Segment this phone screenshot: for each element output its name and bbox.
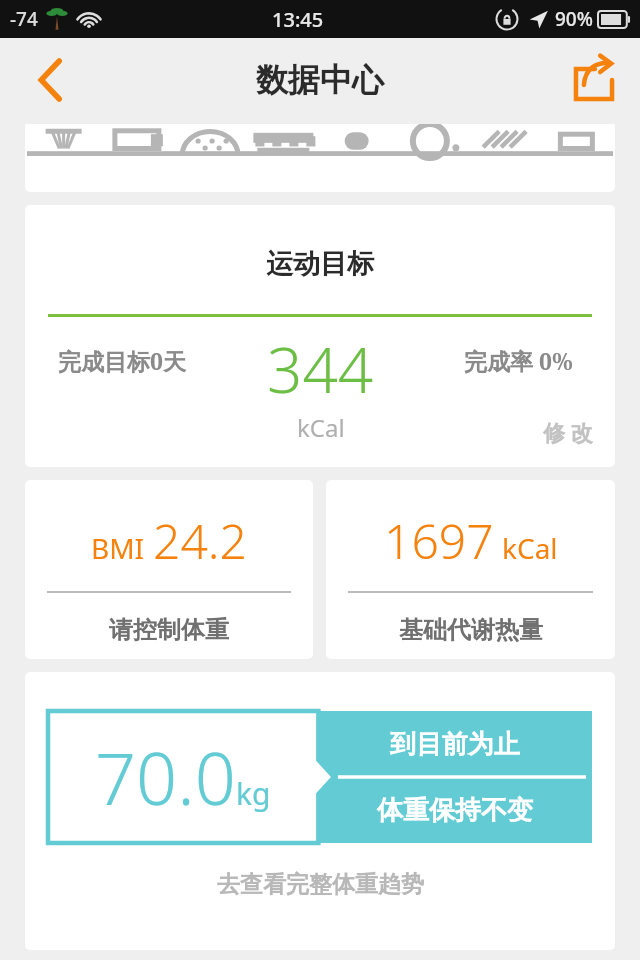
- staticText: 344: [267, 327, 374, 411]
- staticText: -74: [10, 6, 38, 32]
- staticText: BMI: [91, 529, 145, 567]
- button[interactable]: 去查看完整体重趋势: [217, 870, 424, 899]
- staticText: 完成率 0%: [464, 345, 573, 376]
- button[interactable]: BMI: [25, 480, 313, 659]
- staticText: kCal: [502, 529, 558, 567]
- staticText: 90%: [555, 6, 593, 32]
- button[interactable]: 1697: [326, 480, 615, 659]
- button[interactable]: Back: [22, 52, 78, 108]
- staticText: 1697: [384, 508, 494, 573]
- button[interactable]: 70.0: [25, 672, 615, 950]
- staticText: 70.0: [95, 728, 236, 826]
- staticText: 体重保持不变: [377, 794, 533, 827]
- button[interactable]: 修 改: [543, 417, 593, 447]
- staticText: 去查看完整体重趋势: [217, 870, 424, 899]
- staticText: 完成目标0天: [58, 345, 186, 376]
- button[interactable]: 运动目标: [25, 205, 615, 467]
- button[interactable]: Share: [564, 50, 624, 110]
- staticText: 基础代谢热量: [399, 615, 543, 645]
- staticText: kg: [236, 773, 271, 814]
- staticText: 修 改: [543, 417, 593, 447]
- staticText: 到目前为止: [390, 728, 520, 761]
- staticText: 数据中心: [256, 60, 384, 100]
- staticText: kCal: [297, 411, 345, 444]
- button[interactable]: [25, 124, 615, 192]
- staticText: 请控制体重: [109, 615, 229, 645]
- staticText: 13:45: [272, 6, 324, 33]
- staticText: 运动目标: [25, 247, 615, 281]
- staticText: 24.2: [153, 508, 247, 573]
